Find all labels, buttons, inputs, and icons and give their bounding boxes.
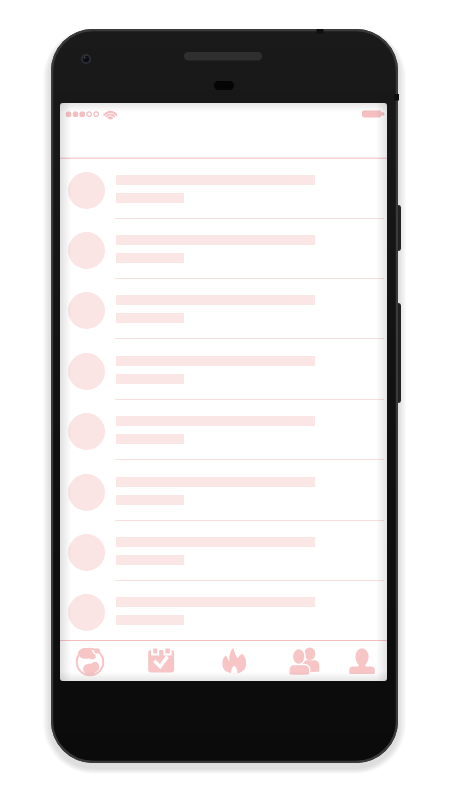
button[interactable] [60, 581, 387, 641]
button[interactable] [63, 641, 117, 681]
button[interactable] [60, 521, 387, 581]
button[interactable] [60, 340, 387, 400]
button[interactable] [279, 641, 333, 681]
button[interactable] [60, 400, 387, 460]
button[interactable] [208, 641, 262, 681]
button[interactable] [335, 641, 387, 681]
button[interactable] [60, 461, 387, 521]
button[interactable] [60, 279, 387, 339]
button[interactable] [60, 159, 387, 219]
button[interactable] [135, 641, 189, 681]
button[interactable] [60, 219, 387, 279]
